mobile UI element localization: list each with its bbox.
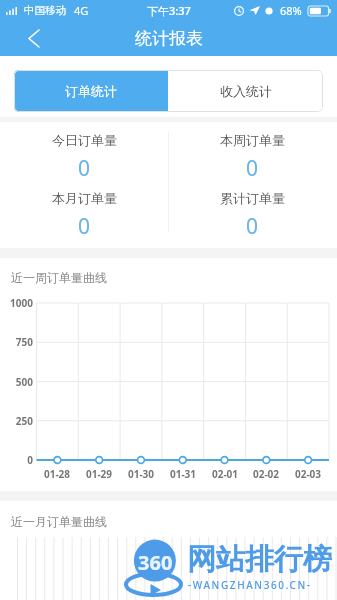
staticText: 01-31 — [161, 467, 205, 481]
staticText: 0 — [246, 154, 259, 183]
staticText: 收入统计 — [220, 83, 272, 99]
staticText: 近一周订单量曲线 — [11, 270, 107, 285]
staticText: 500 — [0, 375, 33, 389]
staticText: 本月订单量 — [52, 190, 117, 206]
staticText: 中国移动 — [24, 4, 66, 17]
staticText: 近一月订单量曲线 — [11, 514, 107, 529]
button[interactable]: 累计订单量 — [168, 186, 337, 244]
staticText: 下午3:37 — [147, 3, 191, 18]
staticText: 网站排行榜 — [187, 541, 332, 578]
button[interactable]: 订单统计 — [14, 70, 168, 112]
button[interactable]: 今日订单量 — [0, 129, 168, 186]
staticText: 68% — [280, 3, 302, 18]
staticText: -WANGZHAN360.CN- — [188, 578, 312, 592]
button[interactable]: 收入统计 — [168, 70, 323, 112]
staticText: 0 — [246, 212, 259, 241]
staticText: 01-28 — [35, 467, 79, 481]
staticText: 02-03 — [286, 467, 330, 481]
staticText: 累计订单量 — [220, 190, 285, 206]
staticText: 02-02 — [244, 467, 288, 481]
staticText: 01-29 — [77, 467, 121, 481]
staticText: 0 — [78, 212, 91, 241]
staticText: 本周订单量 — [220, 132, 285, 148]
button[interactable]: 本周订单量 — [168, 129, 337, 186]
staticText: 今日订单量 — [52, 132, 117, 148]
staticText: 750 — [0, 335, 33, 349]
staticText: 订单统计 — [65, 83, 117, 99]
staticText: 02-01 — [203, 467, 247, 481]
staticText: 统计报表 — [135, 28, 203, 49]
button[interactable]: 本月订单量 — [0, 186, 168, 244]
staticText: 0 — [0, 453, 33, 467]
staticText: 250 — [0, 414, 33, 428]
button[interactable]: Back — [12, 20, 56, 56]
staticText: 01-30 — [119, 467, 163, 481]
staticText: 1000 — [0, 296, 33, 310]
staticText: 4G — [74, 3, 89, 18]
staticText: 360 — [138, 549, 173, 576]
staticText: 0 — [78, 154, 91, 183]
